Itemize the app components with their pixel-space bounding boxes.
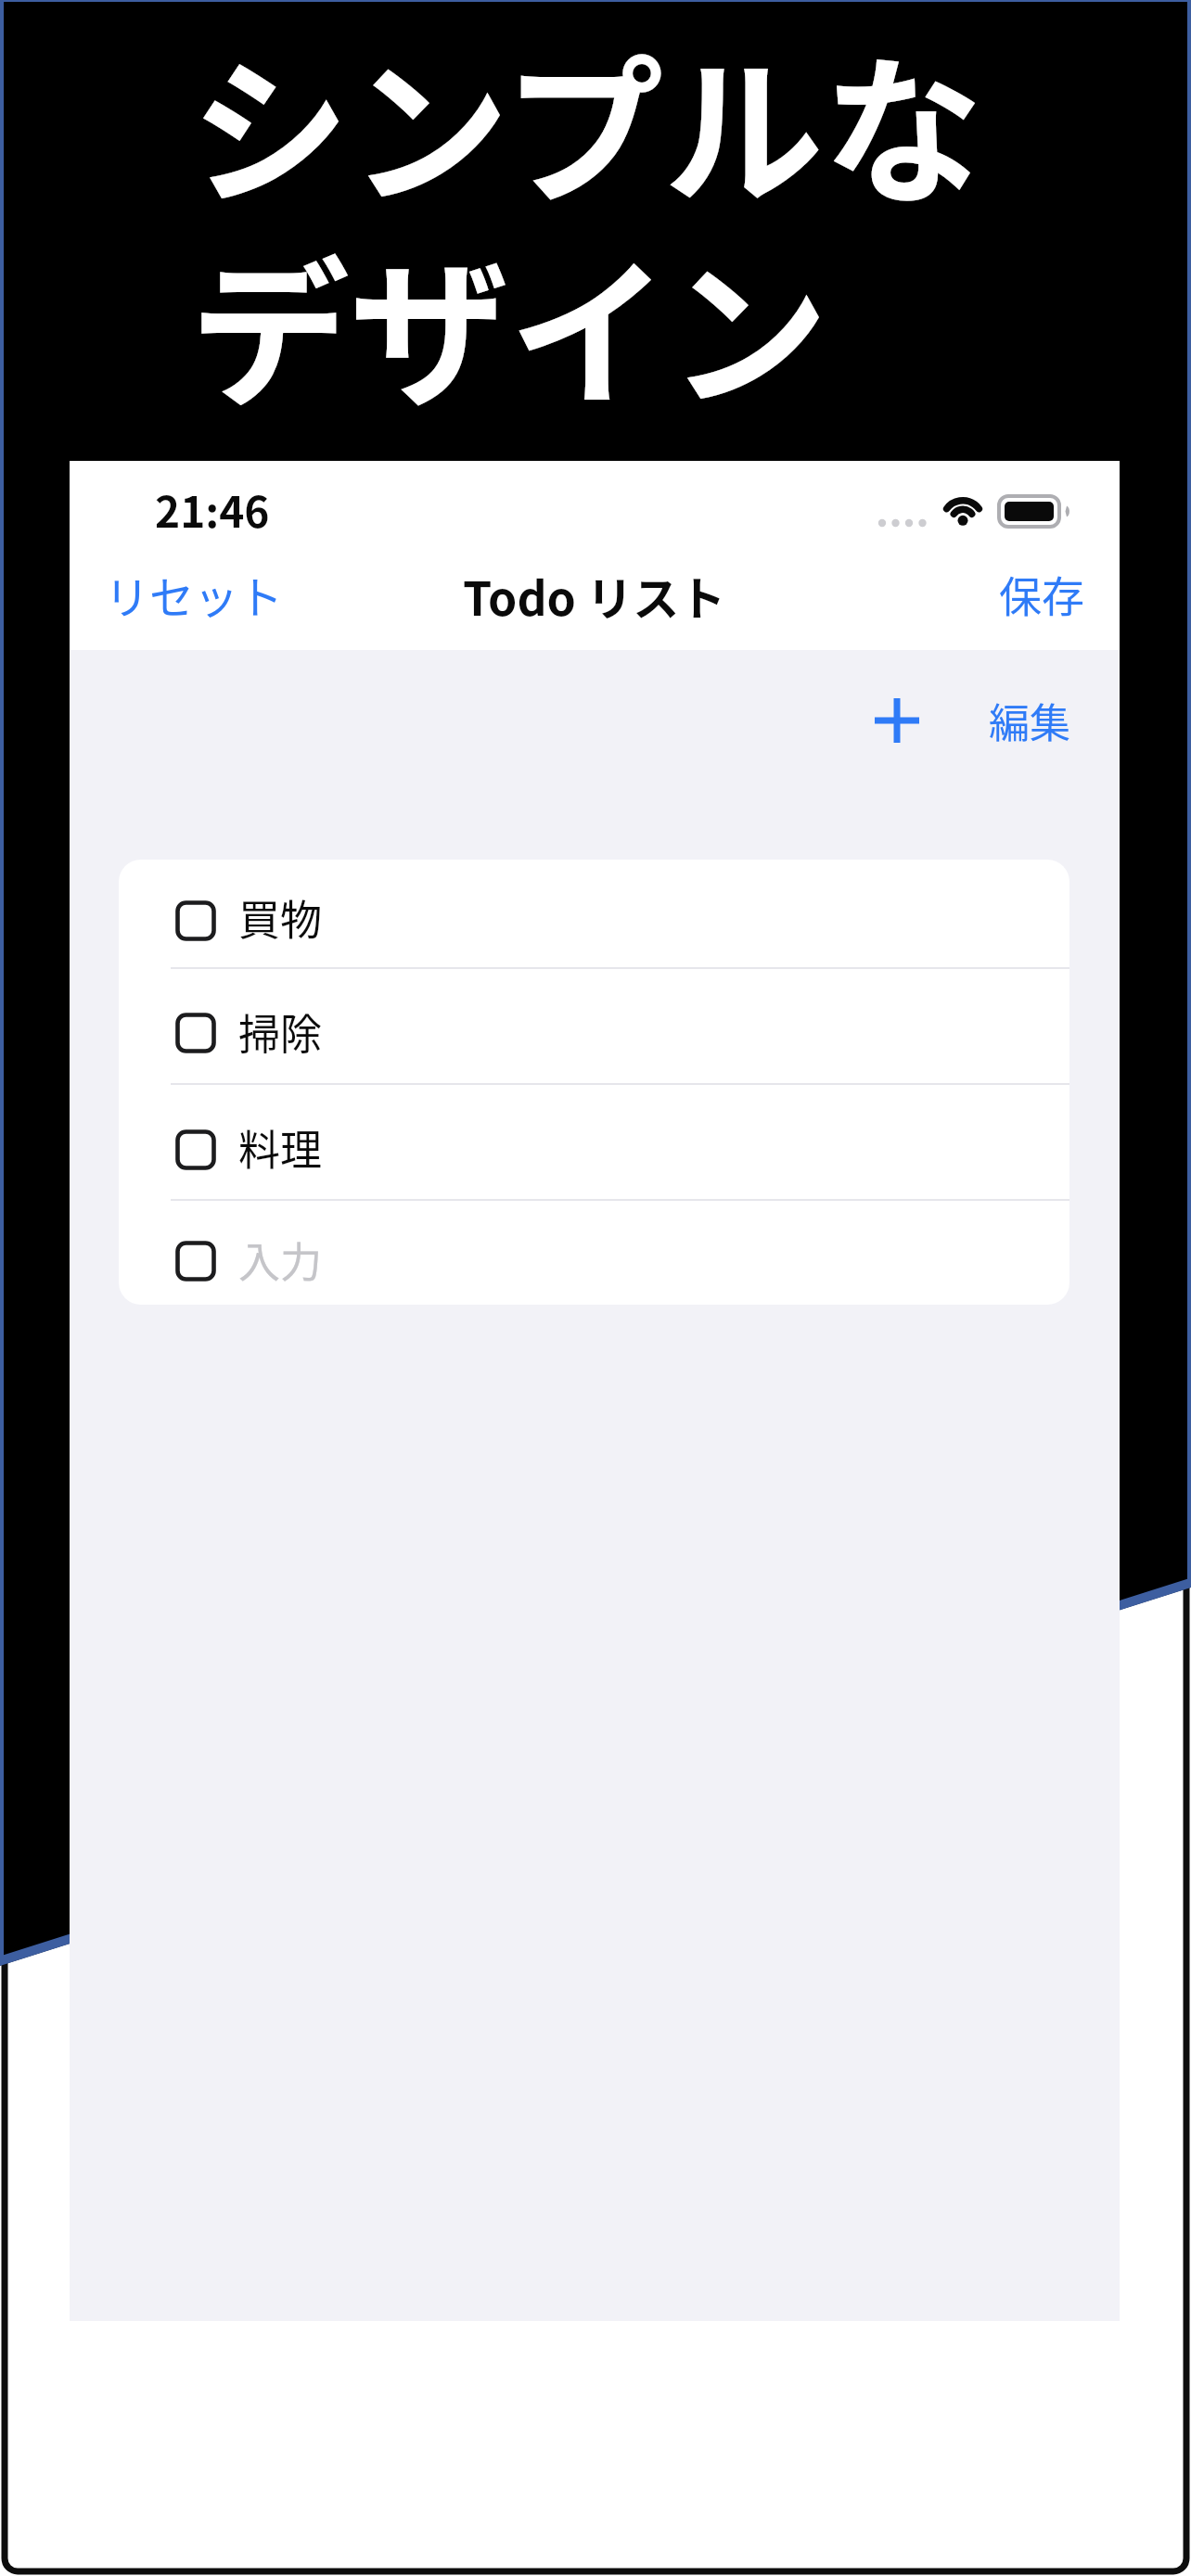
- button[interactable]: 買物: [119, 860, 1069, 969]
- button[interactable]: 掃除: [119, 969, 1069, 1085]
- staticText: 買物: [238, 887, 323, 948]
- button[interactable]: 料理: [119, 1085, 1069, 1201]
- staticText: デザイン: [190, 207, 828, 438]
- staticText: 料理: [238, 1117, 323, 1178]
- button[interactable]: [875, 698, 919, 743]
- button[interactable]: リセット: [105, 562, 284, 627]
- staticText: 21:46: [155, 478, 270, 541]
- staticText: 保存: [999, 563, 1084, 625]
- button[interactable]: 編集: [989, 691, 1070, 750]
- staticText: 編集: [989, 691, 1070, 750]
- staticText: 掃除: [238, 1001, 323, 1062]
- staticText: シンプルな: [190, 5, 983, 236]
- button[interactable]: 保存: [999, 563, 1084, 625]
- staticText: Todo リスト: [463, 562, 726, 629]
- staticText: リセット: [105, 562, 284, 627]
- button[interactable]: 入力: [119, 1201, 1069, 1305]
- staticText: 入力: [238, 1230, 323, 1290]
